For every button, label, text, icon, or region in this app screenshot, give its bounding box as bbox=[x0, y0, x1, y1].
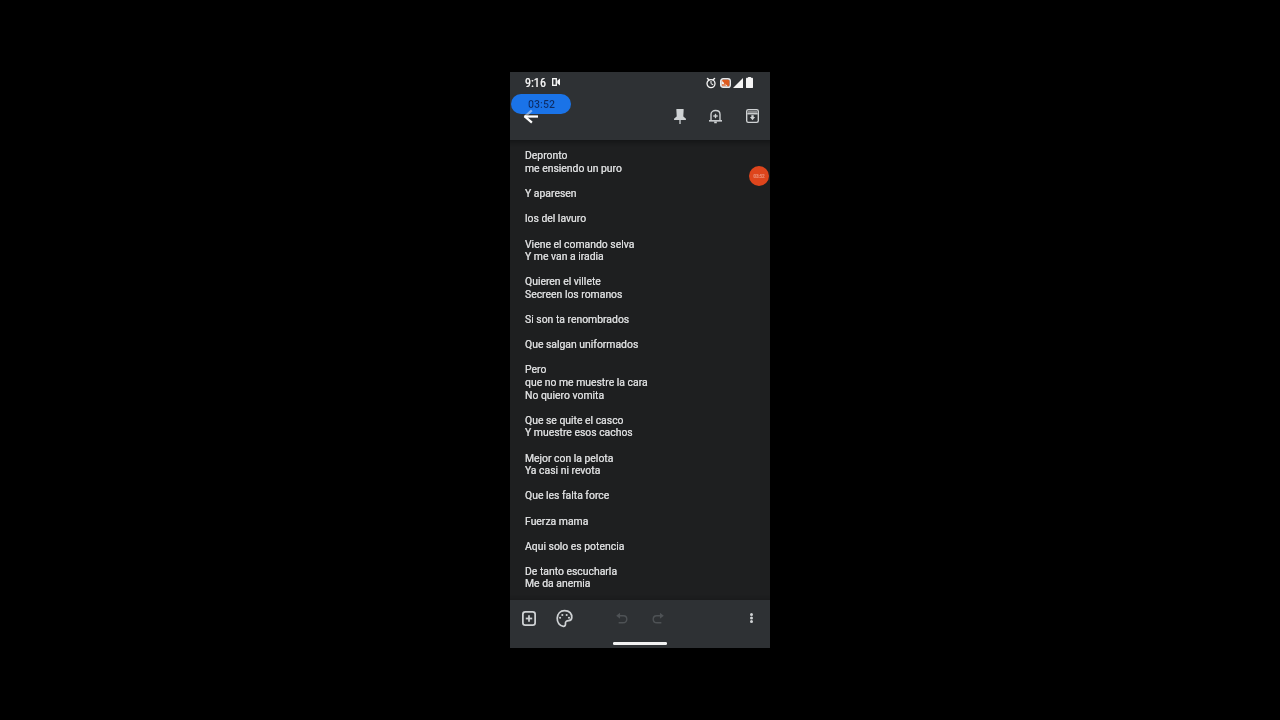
staticText: 03:52 bbox=[753, 174, 765, 179]
staticText: Y muestre esos cachos bbox=[525, 426, 633, 438]
staticText: me ensiendo un puro bbox=[525, 162, 622, 174]
staticText: que no me muestre la cara bbox=[525, 376, 648, 388]
button[interactable]: Add reminder bbox=[697, 98, 733, 134]
button[interactable]: Recording timer 03:52 bbox=[511, 94, 571, 114]
staticText: Y me van a iradia bbox=[525, 250, 604, 262]
button[interactable]: Back bbox=[514, 99, 548, 133]
staticText: Quieren el villete bbox=[525, 275, 601, 287]
staticText: los del lavuro bbox=[525, 212, 587, 224]
staticText: Y aparesen bbox=[525, 187, 577, 199]
button[interactable]: More options bbox=[735, 602, 767, 634]
staticText: Pero bbox=[525, 363, 547, 375]
staticText: Que se quite el casco bbox=[525, 414, 624, 426]
staticText: Secreen los romanos bbox=[525, 288, 623, 300]
button[interactable]: Archive bbox=[734, 98, 770, 134]
staticText: Si son ta renombrados bbox=[525, 313, 630, 325]
button[interactable]: Undo bbox=[606, 602, 638, 634]
staticText: Viene el comando selva bbox=[525, 238, 635, 250]
button[interactable]: Change colour bbox=[548, 602, 580, 634]
button[interactable]: Note body bbox=[510, 141, 770, 600]
staticText: Ya casi ni revota bbox=[525, 464, 601, 476]
staticText: Fuerza mama bbox=[525, 515, 589, 527]
staticText: De tanto escucharla bbox=[525, 565, 618, 577]
staticText: Que salgan uniformados bbox=[525, 338, 639, 350]
staticText: Mejor con la pelota bbox=[525, 452, 614, 464]
button[interactable]: Stop screen recording bbox=[749, 166, 769, 186]
staticText: Me da anemia bbox=[525, 577, 591, 589]
staticText: 03:52 bbox=[528, 98, 555, 110]
button[interactable]: Pin note bbox=[662, 98, 698, 134]
staticText: No quiero vomita bbox=[525, 389, 605, 401]
staticText: 9:16 bbox=[525, 76, 546, 90]
button[interactable]: Add bbox=[513, 602, 545, 634]
staticText: Que les falta force bbox=[525, 489, 610, 501]
staticText: Aqui solo es potencia bbox=[525, 540, 625, 552]
button[interactable]: Redo bbox=[642, 602, 674, 634]
staticText: Depronto bbox=[525, 149, 568, 161]
